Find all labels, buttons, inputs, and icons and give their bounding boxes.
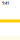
staticText: 9:41 [2,0,9,6]
